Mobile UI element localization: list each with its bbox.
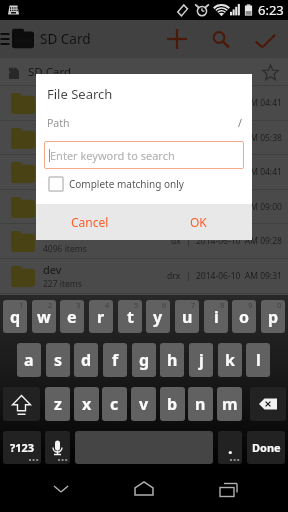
button[interactable]: x <box>74 387 99 421</box>
button[interactable]: Home <box>121 466 167 512</box>
button[interactable]: n <box>188 387 213 421</box>
button[interactable]: Add <box>159 20 195 58</box>
staticText: Path <box>47 116 70 130</box>
button[interactable]: o <box>232 300 256 333</box>
staticText: Complete matching only <box>69 177 184 191</box>
staticText: File Search <box>47 85 113 103</box>
staticText: 7 <box>191 300 196 310</box>
staticText: drwx <box>161 132 181 144</box>
staticText: 9 <box>248 300 253 310</box>
staticText: | <box>186 201 191 213</box>
staticText: c <box>110 393 119 415</box>
button[interactable]: h <box>160 343 184 377</box>
button[interactable]: ?123 <box>3 431 41 464</box>
button[interactable]: Recents <box>205 466 251 512</box>
button[interactable]: Back <box>38 466 84 512</box>
staticText: SD Card <box>40 30 91 48</box>
staticText: 4096 items <box>43 243 87 255</box>
button[interactable]: Search <box>202 20 238 58</box>
button[interactable]: c <box>102 387 127 421</box>
staticText: x <box>82 393 92 415</box>
staticText: 0 <box>277 300 282 310</box>
staticText: drwx <box>161 201 181 213</box>
staticText: SD Card <box>28 64 72 80</box>
staticText: r <box>97 306 105 328</box>
staticText: 2014-06-10 AM 05:38 <box>196 132 282 144</box>
button[interactable]: Done <box>247 431 285 464</box>
button[interactable]: v <box>131 387 156 421</box>
button[interactable]: t <box>118 300 142 333</box>
button[interactable]: k <box>218 343 242 377</box>
button[interactable]: mic <box>45 431 70 464</box>
staticText: y <box>153 306 163 328</box>
button[interactable]: data <box>0 224 288 258</box>
button[interactable]: q <box>3 300 27 333</box>
staticText: 6:23 <box>258 1 284 19</box>
button[interactable]: cache <box>0 121 288 155</box>
staticText: h <box>167 349 178 371</box>
staticText: n <box>195 393 206 415</box>
button[interactable]: y <box>146 300 170 333</box>
button[interactable]: s <box>46 343 70 377</box>
button[interactable]: Menu <box>0 20 11 58</box>
button[interactable]: OK <box>144 204 252 240</box>
button[interactable]: Favorite <box>257 59 283 85</box>
button[interactable]: l <box>246 343 270 377</box>
staticText: 3 items <box>43 174 73 186</box>
staticText: | <box>186 132 191 144</box>
staticText: ?123 <box>10 440 35 455</box>
staticText: j <box>199 349 204 371</box>
staticText: e <box>67 306 77 328</box>
staticText: p <box>268 306 279 328</box>
button[interactable]: j <box>189 343 213 377</box>
staticText: data <box>43 227 67 242</box>
button[interactable]: . <box>218 431 242 464</box>
staticText: 2014-06-10 AM 04:41 <box>196 97 282 109</box>
staticText: | <box>186 270 191 282</box>
staticText: dev <box>43 262 62 277</box>
button[interactable]: config <box>0 155 288 189</box>
staticText: w <box>37 306 51 328</box>
button[interactable]: w <box>32 300 56 333</box>
button[interactable]: b <box>160 387 185 421</box>
staticText: s <box>54 349 63 371</box>
staticText: 5 <box>134 300 139 310</box>
staticText: dx <box>171 235 181 247</box>
button[interactable]: z <box>45 387 70 421</box>
button[interactable]: d <box>0 190 288 224</box>
button[interactable]: acct <box>0 86 288 120</box>
button[interactable]: Confirm <box>247 20 283 58</box>
button[interactable]: Enter keyword to search <box>44 141 244 169</box>
button[interactable]: del <box>250 387 286 421</box>
button[interactable]: m <box>217 387 242 421</box>
button[interactable]: Cancel <box>36 204 144 240</box>
button[interactable]: u <box>175 300 199 333</box>
staticText: 1 <box>19 300 24 310</box>
staticText: OK <box>190 214 207 230</box>
button[interactable]: dev <box>0 259 288 293</box>
button[interactable]: f <box>103 343 127 377</box>
button[interactable]: p <box>261 300 285 333</box>
button[interactable]: g <box>132 343 156 377</box>
button[interactable]: a <box>17 343 41 377</box>
staticText: 3 <box>76 300 81 310</box>
staticText: 4 <box>105 300 110 310</box>
staticText: 2014-06-10 AM 09:31 <box>196 270 282 282</box>
button[interactable]: i <box>204 300 228 333</box>
button[interactable]: d <box>74 343 98 377</box>
button[interactable]: r <box>89 300 113 333</box>
button[interactable]: shift <box>3 387 40 421</box>
staticText: drx <box>167 270 181 282</box>
staticText: 2014-06-10 AM 04:41 <box>196 166 282 178</box>
staticText: / <box>238 116 242 130</box>
button[interactable]: SD Card <box>0 58 288 85</box>
staticText: Enter keyword to search <box>50 148 175 163</box>
button[interactable]: e <box>60 300 84 333</box>
staticText: dr-x <box>165 166 181 178</box>
staticText: cache <box>43 124 73 139</box>
button[interactable]: Complete matching only <box>48 176 252 192</box>
